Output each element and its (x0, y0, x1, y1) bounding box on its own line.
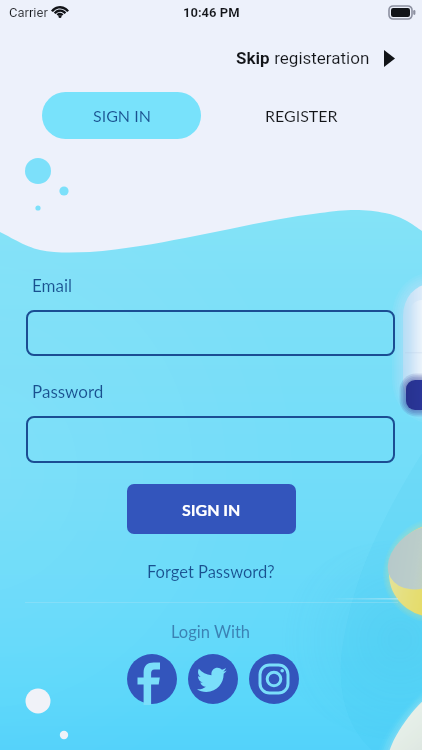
staticText: registeration (270, 48, 370, 68)
button[interactable]: REGISTER (240, 92, 362, 139)
staticText: SIGN IN (182, 500, 241, 519)
button[interactable]: Skip (230, 43, 401, 73)
button[interactable]: Facebook (127, 654, 177, 704)
staticText: Password (32, 381, 104, 401)
staticText: Forget Password? (147, 562, 275, 582)
button[interactable]: Forget Password? (0, 560, 422, 584)
button[interactable]: SIGN IN (127, 484, 296, 534)
staticText: Login With (171, 622, 251, 642)
staticText: SIGN IN (93, 106, 151, 125)
staticText: 10:46 PM (183, 5, 240, 20)
button[interactable] (26, 310, 395, 356)
button[interactable]: SIGN IN (42, 92, 201, 139)
button[interactable]: Twitter (188, 654, 238, 704)
button[interactable] (26, 416, 395, 463)
staticText: Carrier (9, 5, 48, 20)
staticText: REGISTER (265, 106, 338, 125)
button[interactable]: Instagram (249, 654, 299, 704)
staticText: Email (32, 275, 73, 295)
staticText: Skip (236, 48, 270, 68)
